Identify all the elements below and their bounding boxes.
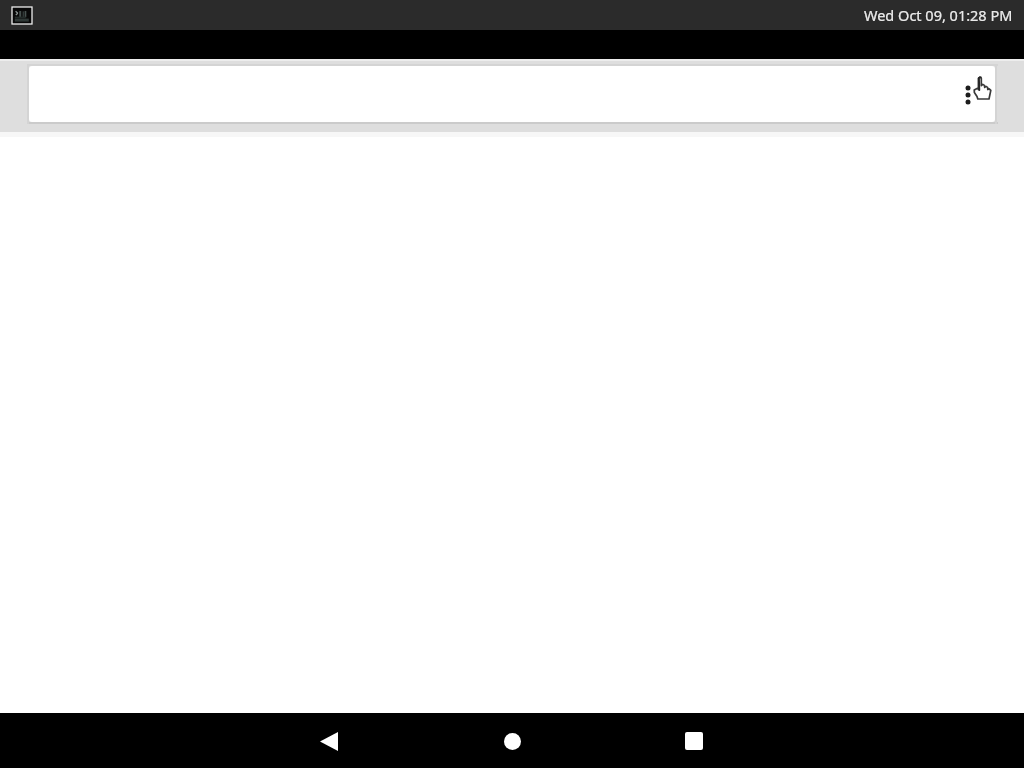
button[interactable]: Home [488, 717, 536, 765]
button[interactable]: Recent apps [670, 717, 718, 765]
button[interactable]: Back [305, 717, 353, 765]
button[interactable]: More options [948, 75, 988, 115]
button[interactable]: Terminal app icon [12, 7, 32, 24]
staticText: Wed Oct 09, 01:28 PM [864, 5, 1013, 25]
